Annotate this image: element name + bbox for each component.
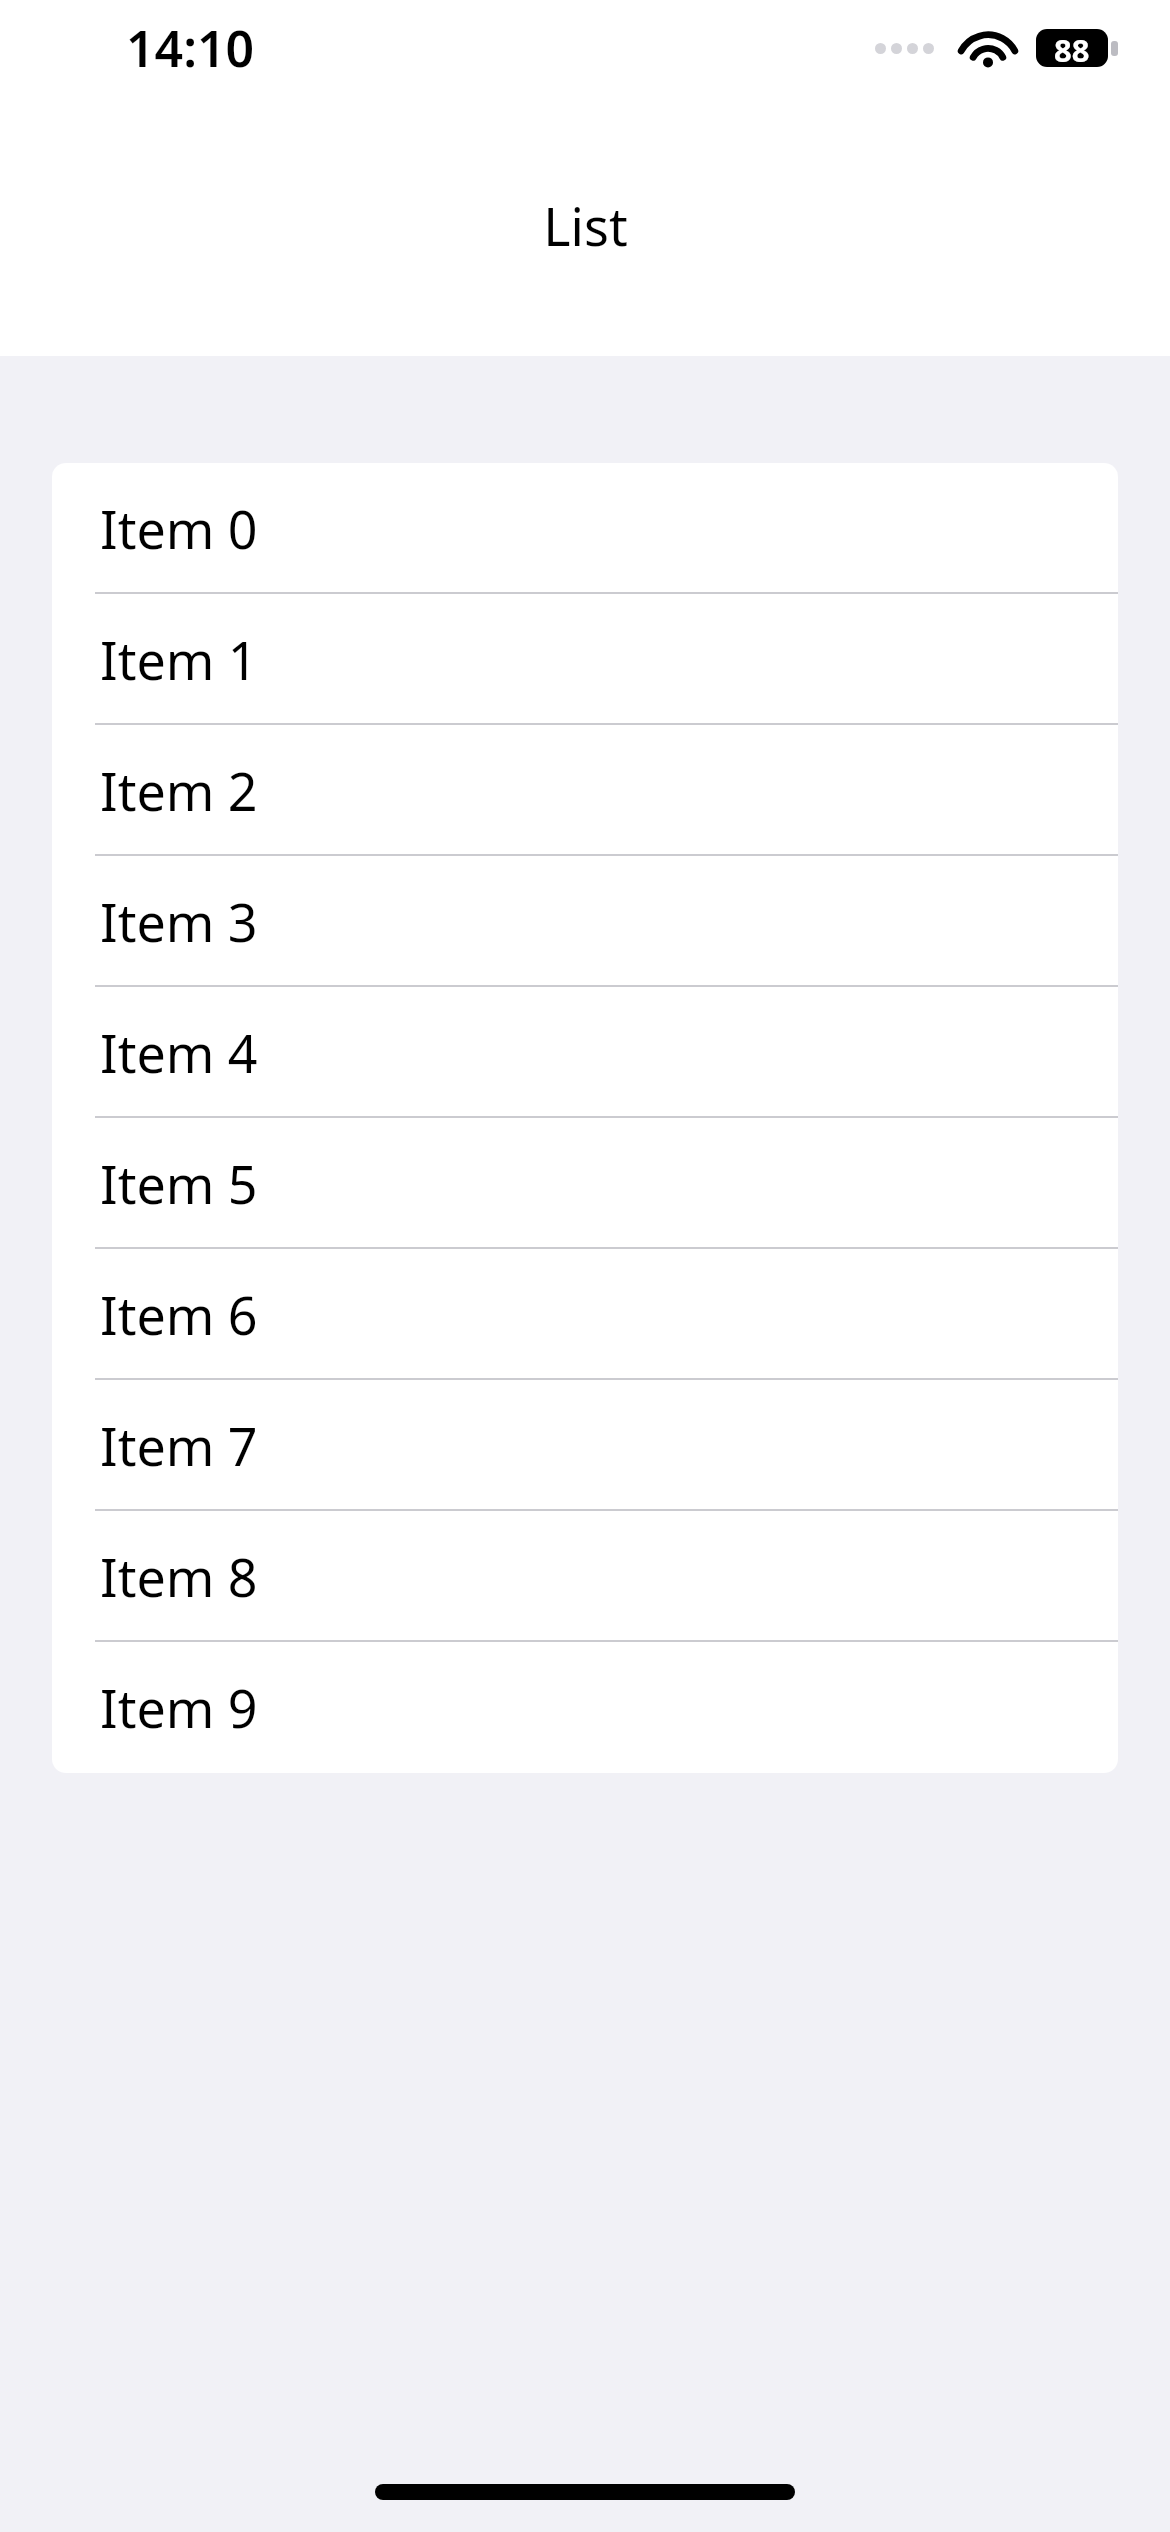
button[interactable]: Item 6 bbox=[52, 1249, 1118, 1380]
staticText: Item 7 bbox=[100, 1410, 258, 1481]
other: Cellular signal bbox=[875, 43, 934, 54]
staticText: Item 3 bbox=[100, 886, 258, 957]
staticText: Item 6 bbox=[100, 1279, 258, 1350]
button[interactable]: Item 7 bbox=[52, 1380, 1118, 1511]
button[interactable]: Item 8 bbox=[52, 1511, 1118, 1642]
other: Battery 88 percent bbox=[1036, 29, 1118, 67]
other: Wi-Fi bbox=[962, 28, 1014, 68]
button[interactable]: Item 0 bbox=[52, 463, 1118, 594]
staticText: Item 2 bbox=[100, 755, 258, 826]
staticText: Item 5 bbox=[100, 1148, 258, 1219]
button[interactable]: Item 4 bbox=[52, 987, 1118, 1118]
staticText: Item 1 bbox=[100, 624, 258, 695]
button[interactable]: Item 5 bbox=[52, 1118, 1118, 1249]
button[interactable]: Item 9 bbox=[52, 1642, 1118, 1773]
staticText: 14:10 bbox=[126, 14, 255, 82]
staticText: Item 0 bbox=[100, 493, 258, 564]
button[interactable]: Item 1 bbox=[52, 594, 1118, 725]
button[interactable]: Item 3 bbox=[52, 856, 1118, 987]
staticText: Item 4 bbox=[100, 1017, 258, 1088]
staticText: Item 9 bbox=[100, 1672, 258, 1743]
staticText: List bbox=[543, 190, 628, 261]
staticText: Item 8 bbox=[100, 1541, 258, 1612]
staticText: 88 bbox=[1054, 29, 1090, 67]
button[interactable]: Item 2 bbox=[52, 725, 1118, 856]
